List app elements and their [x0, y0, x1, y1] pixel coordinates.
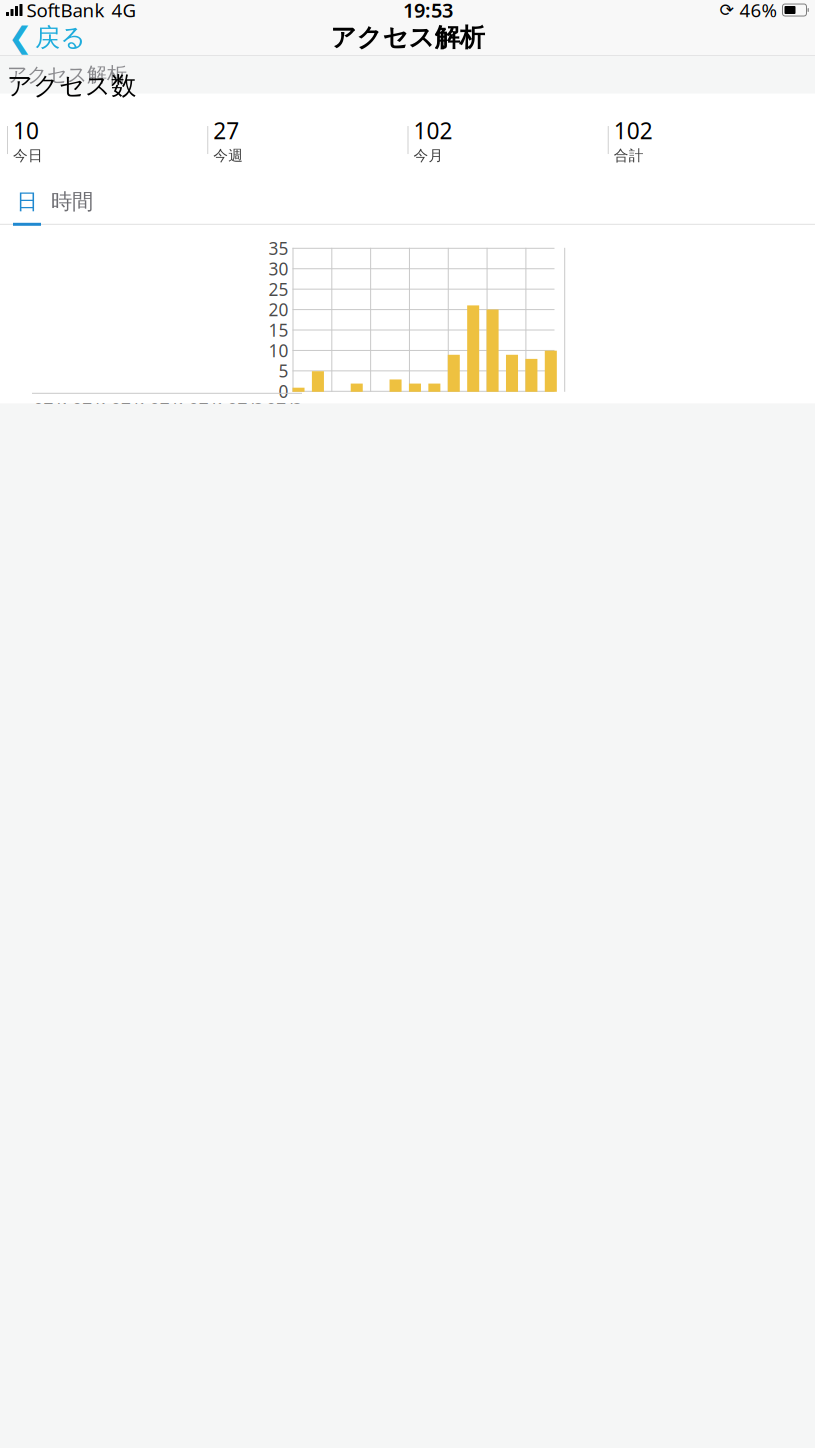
staticText: 19:53	[403, 0, 453, 23]
staticText: 時間	[51, 189, 93, 215]
staticText: 46%	[739, 0, 777, 22]
staticText: アクセス解析	[7, 62, 127, 87]
staticText: 27	[213, 115, 239, 146]
staticText: 07/23	[266, 398, 302, 444]
staticText: 10	[13, 115, 39, 146]
staticText: 102	[413, 115, 452, 146]
staticText: SoftBank	[26, 0, 104, 22]
staticText: 今月	[413, 147, 443, 165]
staticText: 07/17	[150, 398, 186, 444]
staticText: 07/19	[189, 398, 225, 444]
button[interactable]: 時間	[41, 181, 103, 223]
button[interactable]: ❮	[2, 17, 92, 58]
staticText: 07/13	[72, 398, 108, 444]
staticText: 10	[268, 339, 288, 362]
staticText: 07/21	[227, 398, 263, 444]
staticText: 15	[268, 318, 288, 341]
staticText: 合計	[614, 147, 644, 165]
staticText: ⟳	[719, 0, 734, 20]
staticText: 戻る	[35, 22, 86, 53]
staticText: 日	[16, 189, 37, 215]
staticText: アクセス数	[7, 70, 136, 101]
staticText: 5	[278, 359, 288, 382]
staticText: ❮	[8, 21, 33, 54]
staticText: アクセス解析	[330, 22, 484, 53]
staticText: 30	[268, 257, 288, 280]
staticText: 35	[268, 237, 288, 260]
button[interactable]: 日	[13, 181, 41, 223]
staticText: 4G	[111, 0, 136, 22]
staticText: 0	[278, 380, 288, 403]
staticText: 07/11	[33, 398, 69, 444]
staticText: 07/15	[111, 398, 147, 444]
staticText: 102	[614, 115, 653, 146]
staticText: 今週	[213, 147, 243, 165]
staticText: 20	[268, 298, 288, 321]
staticText: 今日	[13, 147, 43, 165]
staticText: 25	[268, 278, 288, 301]
